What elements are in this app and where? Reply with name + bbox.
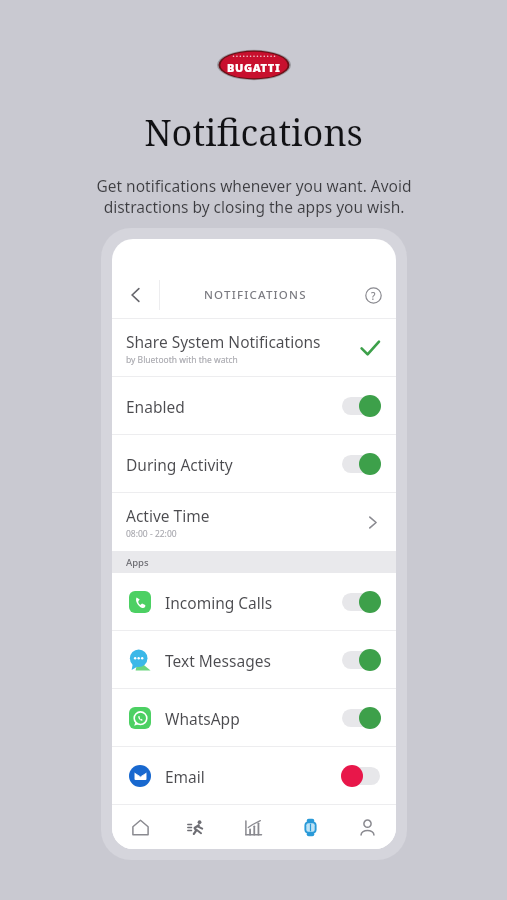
staticText: Notifications bbox=[144, 108, 363, 157]
button[interactable]: Statistics bbox=[225, 805, 282, 849]
button[interactable]: Toggle on bbox=[342, 649, 380, 671]
staticText: NOTIFICATIONS bbox=[204, 287, 307, 303]
button[interactable]: Activity bbox=[168, 805, 225, 849]
staticText: Get notifications whenever you want. Avo… bbox=[96, 175, 412, 218]
button[interactable]: Back bbox=[112, 271, 159, 319]
button[interactable]: Watch bbox=[282, 805, 339, 849]
button[interactable]: Share System Notifications bbox=[112, 319, 396, 377]
staticText: Active Time bbox=[126, 505, 210, 526]
staticText: Share System Notifications bbox=[126, 331, 321, 352]
button[interactable]: Profile bbox=[339, 805, 396, 849]
button[interactable]: Text Messages bbox=[112, 631, 396, 689]
button[interactable]: WhatsApp bbox=[112, 689, 396, 747]
button[interactable]: Toggle on bbox=[342, 707, 380, 729]
staticText: Incoming Calls bbox=[165, 592, 342, 613]
staticText: by Bluetooth with the watch bbox=[126, 354, 238, 366]
button[interactable]: Active Time bbox=[112, 493, 396, 551]
button[interactable]: Incoming Calls bbox=[112, 573, 396, 631]
staticText: Text Messages bbox=[165, 650, 342, 671]
staticText: Apps bbox=[126, 556, 149, 569]
button[interactable]: Home bbox=[112, 805, 168, 849]
button[interactable]: Email bbox=[112, 747, 396, 805]
button[interactable]: During Activity bbox=[112, 435, 396, 493]
staticText: Email bbox=[165, 766, 342, 787]
staticText: Enabled bbox=[126, 396, 342, 417]
staticText: During Activity bbox=[126, 454, 342, 475]
button[interactable]: Help bbox=[350, 271, 396, 319]
staticText: BUGATTI bbox=[227, 60, 281, 75]
button[interactable]: Toggle off bbox=[342, 765, 380, 787]
button[interactable]: Toggle on bbox=[342, 453, 380, 475]
staticText: 08:00 - 22:00 bbox=[126, 528, 177, 540]
staticText: WhatsApp bbox=[165, 708, 342, 729]
button[interactable]: Toggle on bbox=[342, 591, 380, 613]
button[interactable]: Toggle on bbox=[342, 395, 380, 417]
button[interactable]: Enabled bbox=[112, 377, 396, 435]
staticText: ? bbox=[371, 289, 376, 303]
